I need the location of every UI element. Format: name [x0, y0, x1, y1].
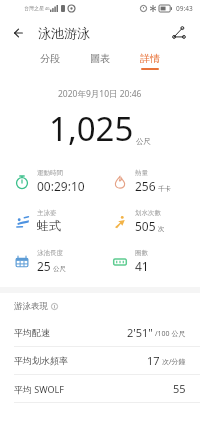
- button[interactable]: 平均 SWOLF: [0, 375, 200, 403]
- button[interactable]: Share: [168, 22, 190, 44]
- staticText: 蛙式: [37, 218, 61, 233]
- button[interactable]: 圖表: [86, 51, 114, 71]
- staticText: 泳池游泳: [38, 25, 90, 41]
- staticText: 256: [135, 178, 156, 194]
- staticText: 505: [135, 218, 156, 234]
- staticText: 1,025: [49, 106, 134, 151]
- button[interactable]: Back: [9, 23, 29, 43]
- staticText: 4G: [45, 6, 50, 11]
- button[interactable]: 分段: [36, 51, 64, 71]
- staticText: 平均划水頻率: [14, 355, 68, 366]
- staticText: 09:43: [176, 4, 193, 13]
- staticText: 25: [37, 258, 51, 274]
- staticText: 圈數: [135, 249, 148, 257]
- staticText: 平均配速: [14, 327, 50, 338]
- staticText: 公尺: [136, 137, 151, 146]
- staticText: /100 公尺: [155, 329, 186, 339]
- staticText: 次: [158, 225, 165, 233]
- staticText: 圖表: [90, 52, 110, 65]
- staticText: 主泳姿: [37, 209, 57, 217]
- staticText: 運動時間: [37, 169, 63, 177]
- button[interactable]: 平均配速: [0, 319, 200, 347]
- staticText: 分段: [40, 52, 60, 65]
- staticText: 17: [147, 353, 160, 368]
- staticText: 00:29:10: [37, 178, 85, 194]
- staticText: 划水次數: [135, 209, 161, 217]
- staticText: 詳情: [140, 52, 160, 65]
- staticText: 千卡: [158, 185, 171, 193]
- staticText: 游泳表現: [14, 301, 48, 312]
- staticText: 次/分鐘: [162, 357, 186, 367]
- button[interactable]: 詳情: [136, 51, 164, 71]
- button[interactable]: 平均划水頻率: [0, 347, 200, 375]
- staticText: 熱量: [135, 169, 148, 177]
- staticText: 2020年9月10日 20:46: [58, 88, 142, 100]
- staticText: 55: [173, 381, 186, 396]
- staticText: 公尺: [53, 265, 66, 273]
- staticText: 2'51": [127, 325, 153, 340]
- staticText: 41: [135, 258, 149, 274]
- staticText: 平均 SWOLF: [14, 383, 64, 395]
- staticText: 台灣之星: [24, 5, 44, 11]
- staticText: 泳池長度: [37, 249, 63, 257]
